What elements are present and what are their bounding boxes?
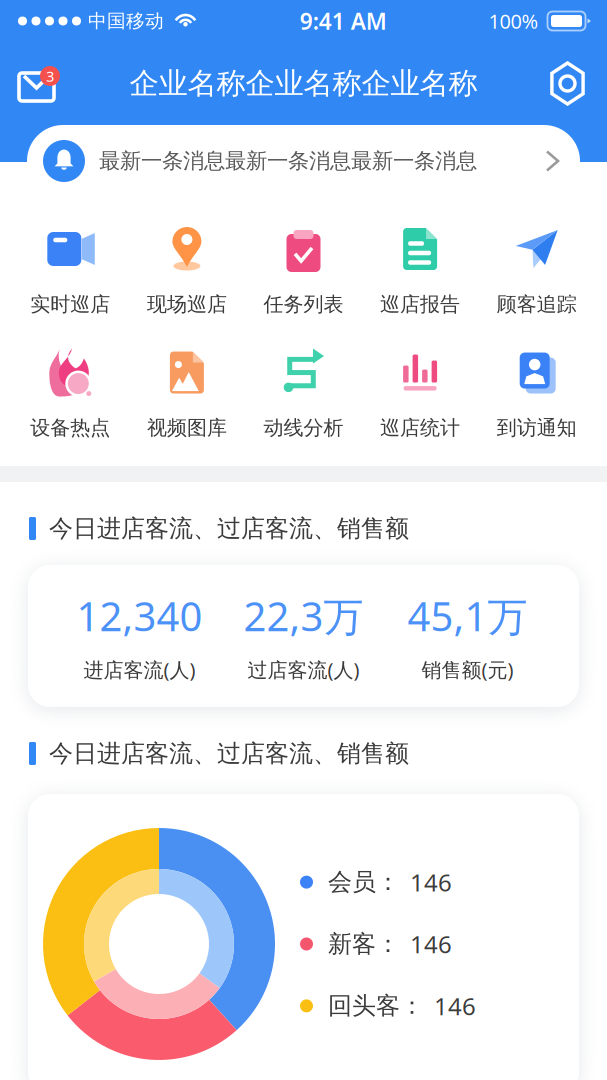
staticText: 设备热点 xyxy=(30,416,110,440)
button[interactable]: 最新一条消息最新一条消息最新一条消息 xyxy=(27,125,580,197)
staticText: 销售额(元) xyxy=(421,656,513,683)
staticText: 巡店统计 xyxy=(380,416,460,440)
staticText: 任务列表 xyxy=(263,292,343,317)
staticText: 过店客流(人) xyxy=(247,656,359,683)
staticText: 巡店报告 xyxy=(380,292,460,317)
button[interactable]: 任务列表 xyxy=(245,225,362,317)
staticText: 3 xyxy=(46,66,54,86)
staticText: 到访通知 xyxy=(497,416,577,440)
staticText: 12,340 xyxy=(76,589,202,642)
button[interactable]: 现场巡店 xyxy=(129,225,245,317)
staticText: 实时巡店 xyxy=(30,292,110,317)
button[interactable]: 顾客追踪 xyxy=(478,225,595,317)
staticText: 今日进店客流、过店客流、销售额 xyxy=(49,514,409,543)
staticText: 视频图库 xyxy=(147,416,227,440)
button[interactable]: 到访通知 xyxy=(478,349,595,440)
staticText: 会员： xyxy=(328,867,400,897)
staticText: 45,1万 xyxy=(407,589,527,642)
staticText: 22,3万 xyxy=(243,589,363,642)
staticText: 146 xyxy=(410,928,452,960)
button[interactable]: Messages xyxy=(8,49,71,118)
staticText: 顾客追踪 xyxy=(497,292,577,317)
staticText: 100% xyxy=(488,8,538,34)
button[interactable]: 动线分析 xyxy=(245,349,362,440)
staticText: 中国移动 xyxy=(88,9,164,32)
staticText: 企业名称企业名称企业名称 xyxy=(129,65,477,101)
button[interactable]: 视频图库 xyxy=(129,349,245,440)
button[interactable]: 设备热点 xyxy=(12,349,129,440)
staticText: 进店客流(人) xyxy=(83,656,195,683)
staticText: 146 xyxy=(434,990,476,1022)
staticText: 今日进店客流、过店客流、销售额 xyxy=(49,739,409,768)
staticText: 9:41 AM xyxy=(300,6,387,36)
button[interactable]: 巡店统计 xyxy=(362,349,478,440)
staticText: 新客： xyxy=(328,929,400,959)
staticText: 146 xyxy=(410,866,452,898)
staticText: 最新一条消息最新一条消息最新一条消息 xyxy=(99,148,477,174)
staticText: 现场巡店 xyxy=(147,292,227,317)
staticText: 回头客： xyxy=(328,991,424,1021)
button[interactable]: 巡店报告 xyxy=(362,225,478,317)
staticText: 动线分析 xyxy=(263,416,343,440)
button[interactable]: 实时巡店 xyxy=(12,225,129,317)
button[interactable]: Settings xyxy=(536,49,599,118)
